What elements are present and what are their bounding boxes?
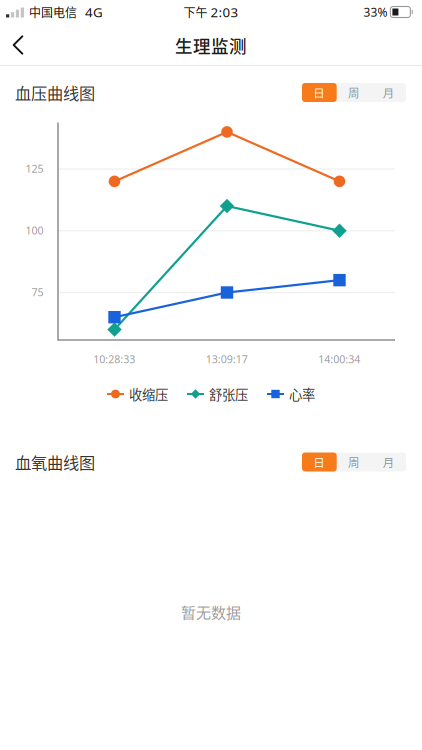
- staticText: 33%: [363, 4, 387, 20]
- staticText: 暂无数据: [181, 601, 241, 623]
- staticText: 月: [383, 454, 395, 470]
- staticText: 日: [313, 454, 325, 470]
- staticText: 100: [25, 223, 43, 237]
- staticText: 生理监测: [175, 32, 247, 58]
- button[interactable]: 日: [302, 452, 337, 471]
- staticText: 下午: [183, 3, 207, 21]
- button[interactable]: 月: [371, 83, 406, 102]
- staticText: 舒张压: [209, 384, 248, 404]
- button[interactable]: 周: [337, 83, 371, 102]
- staticText: 收缩压: [129, 384, 168, 404]
- staticText: 心率: [289, 384, 315, 404]
- button[interactable]: 周: [337, 452, 371, 471]
- staticText: 中国电信: [29, 3, 77, 21]
- button[interactable]: 月: [371, 452, 406, 471]
- button[interactable]: 日: [302, 83, 337, 102]
- button[interactable]: Back: [0, 24, 36, 66]
- staticText: 血氧曲线图: [15, 450, 95, 474]
- staticText: 月: [383, 84, 395, 101]
- staticText: 14:00:34: [318, 352, 360, 366]
- staticText: 周: [348, 84, 360, 101]
- staticText: 125: [25, 161, 43, 176]
- staticText: 2:03: [210, 3, 238, 21]
- staticText: 75: [31, 285, 43, 299]
- staticText: 4G: [85, 3, 103, 21]
- staticText: 日: [313, 84, 325, 101]
- staticText: 血压曲线图: [15, 81, 95, 104]
- staticText: 周: [348, 454, 360, 470]
- staticText: 10:28:33: [93, 352, 135, 366]
- staticText: 13:09:17: [206, 352, 248, 366]
